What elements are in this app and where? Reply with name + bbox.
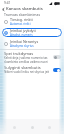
staticText: Trumpas skambinimas	[4, 12, 41, 16]
staticText: Atsakyt. numeris	[10, 33, 33, 37]
staticText: Jeinikai jvykdyti	[10, 28, 36, 33]
staticText: Sulyginti skambutis	[4, 65, 41, 70]
button[interactable]: Toggle	[53, 68, 61, 72]
button[interactable]: Jeinikai Nerantys	[2, 39, 62, 48]
staticText: Jeinikai Nerantys	[10, 39, 39, 44]
button[interactable]: Jeinikai jvykdyti	[2, 28, 62, 37]
button[interactable]: Recents	[47, 125, 52, 130]
staticText: Kanuos skambutis	[6, 6, 43, 12]
button[interactable]: Back	[12, 125, 17, 130]
staticText: Automat. rinkti	[10, 22, 31, 26]
button[interactable]: Back	[0, 6, 6, 12]
button[interactable]: Sulyginti skambutis	[0, 64, 64, 75]
staticText: 9:41	[4, 1, 11, 5]
button[interactable]: Toggle	[53, 55, 61, 59]
button[interactable]: Home	[29, 124, 35, 130]
staticText: Atsakymo skyrius	[10, 44, 34, 48]
staticText: Nikieri vuoki linkiu nei skyrius jeit	[4, 70, 50, 74]
button[interactable]: Spei trukdymas	[0, 50, 64, 64]
button[interactable]: Tiesiog. rinkti	[2, 17, 62, 26]
staticText: Tiesiog. rinkti	[10, 17, 33, 22]
staticText: skambinto zenklas vaikmo nuori	[4, 60, 48, 64]
staticText: Kelnti deja j vaikmo numerio tas	[4, 56, 48, 60]
staticText: Spei trukdymas	[4, 51, 34, 56]
